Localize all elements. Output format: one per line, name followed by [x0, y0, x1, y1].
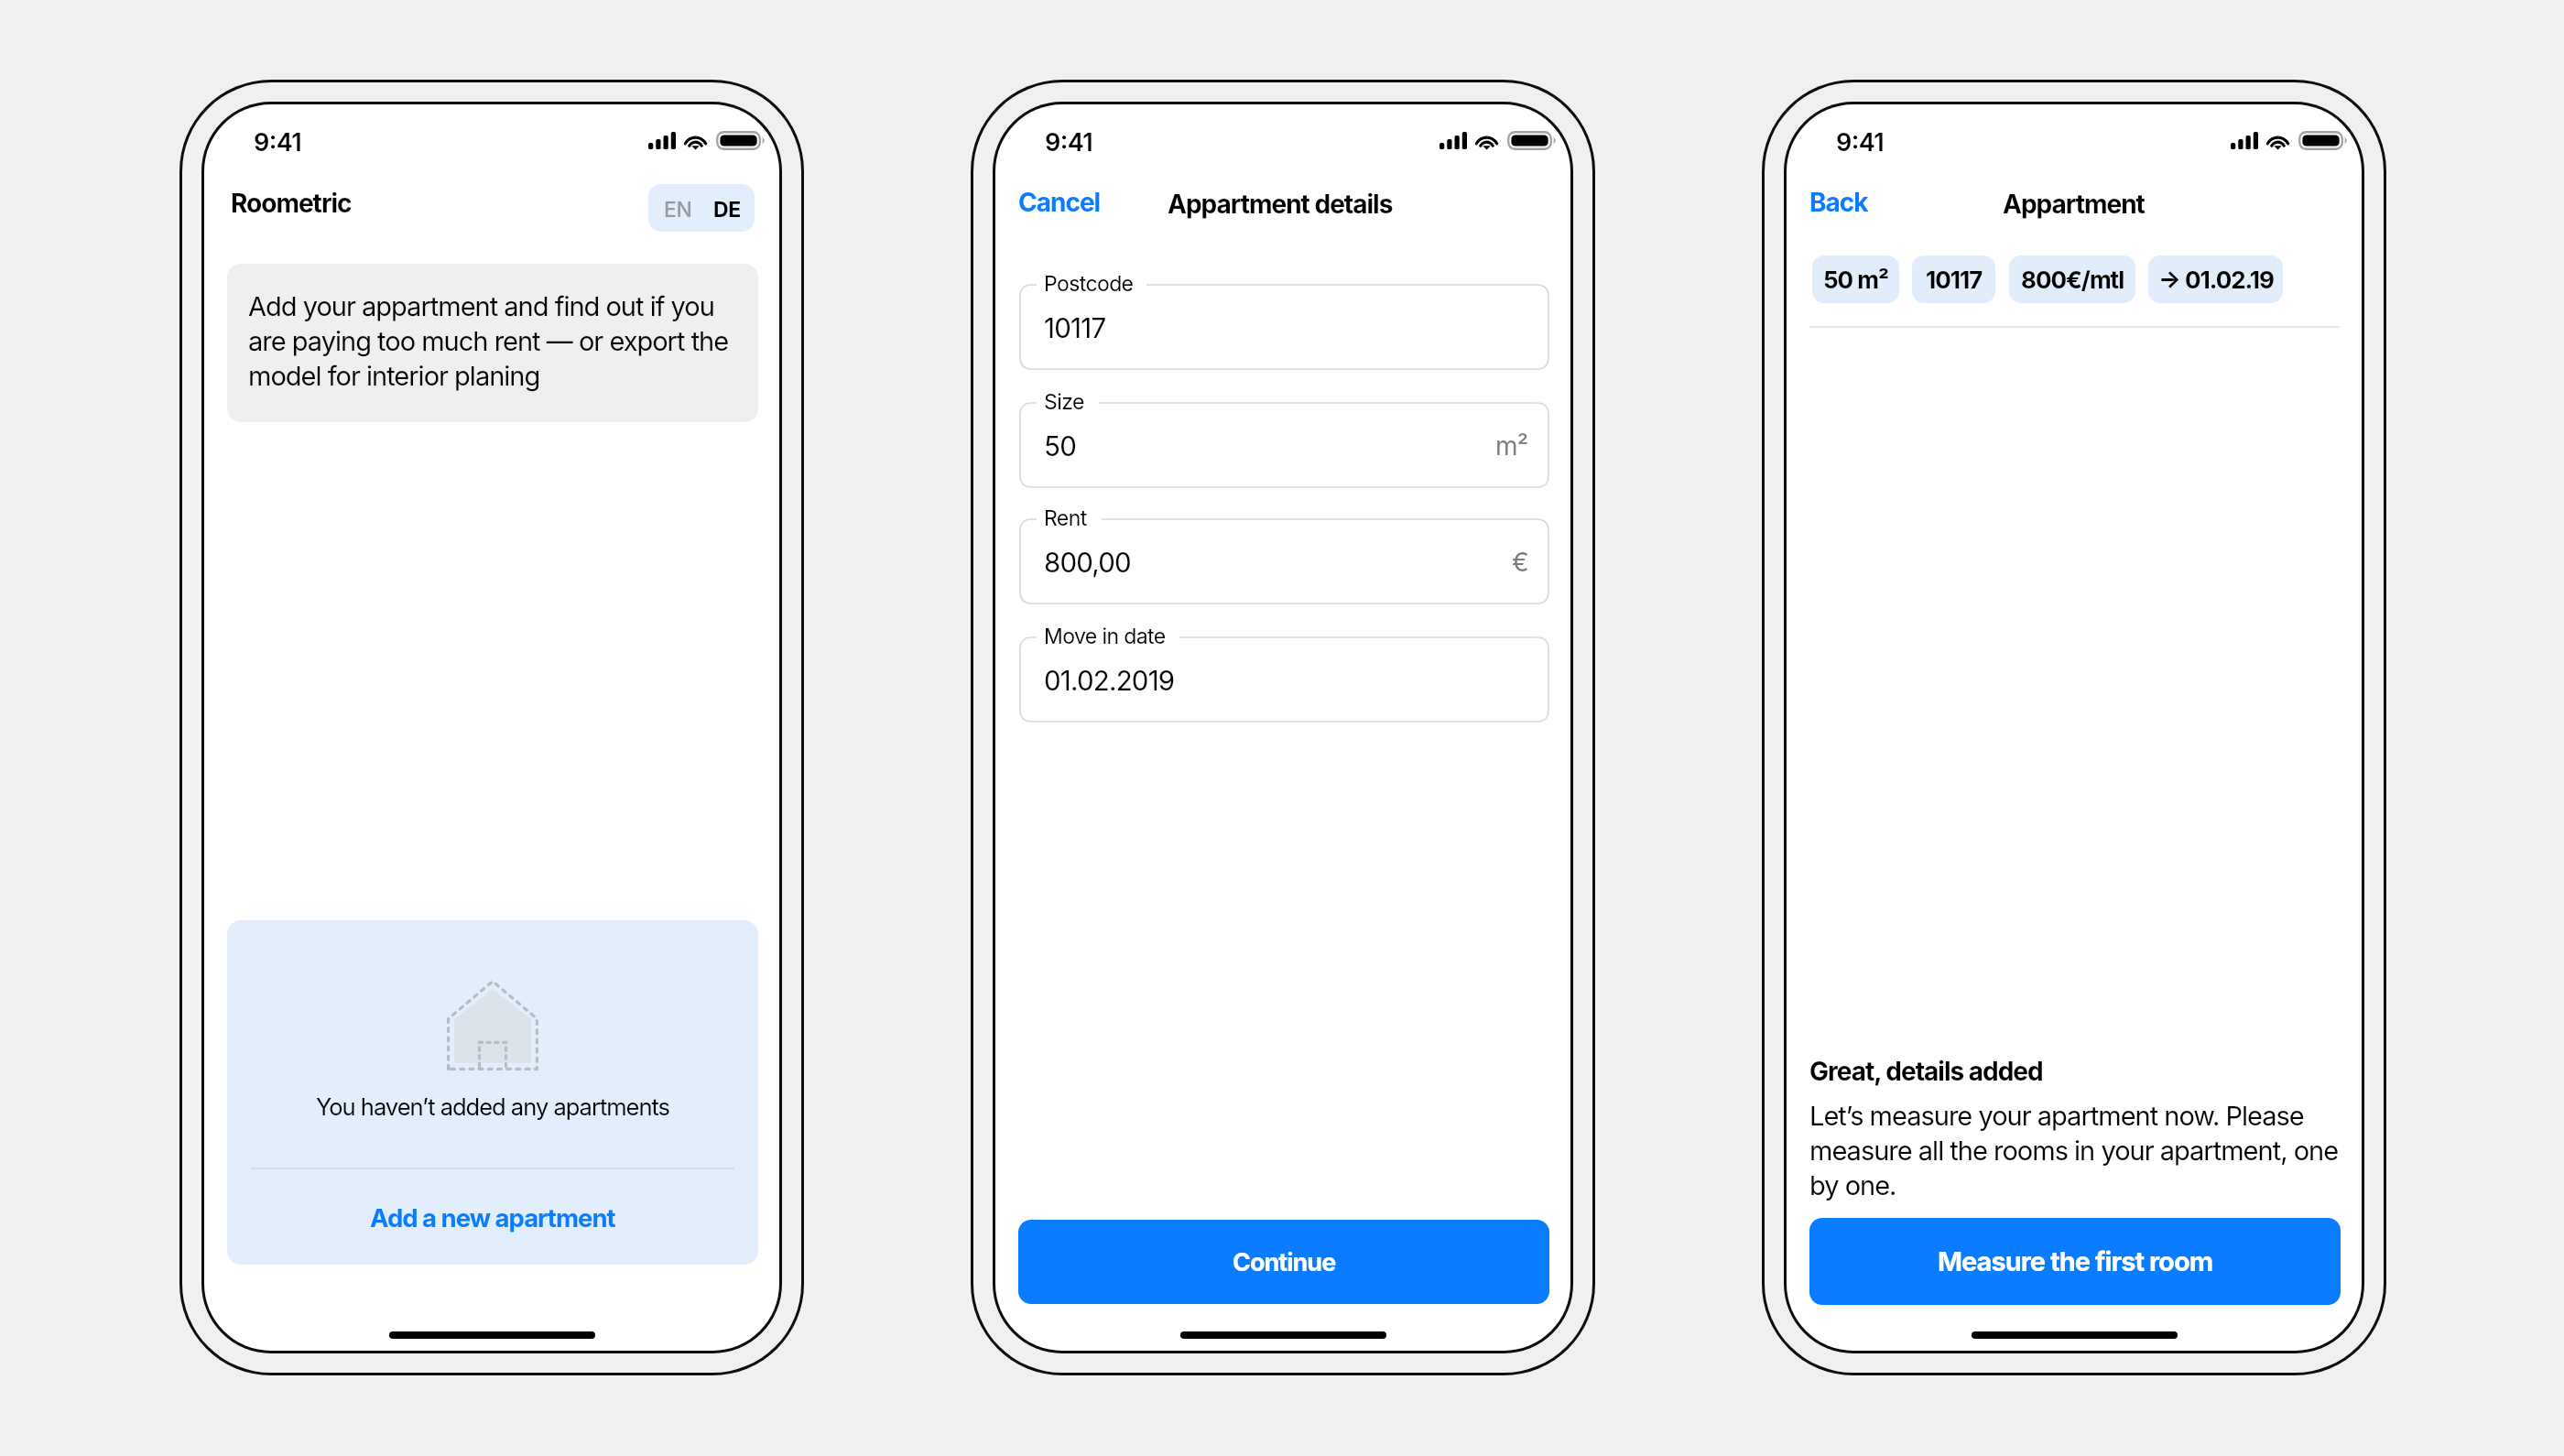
button[interactable]: 10117: [1912, 255, 1995, 303]
staticText: 9:41: [1045, 127, 1093, 158]
staticText: Let’s measure your apartment now. Please…: [1809, 1100, 2341, 1201]
staticText: 9:41: [1836, 127, 1885, 158]
staticText: Cancel: [1018, 187, 1101, 218]
staticText: Move in date: [1044, 624, 1166, 649]
staticText: → 01.02.19: [2158, 266, 2274, 294]
staticText: €: [1512, 547, 1528, 578]
button[interactable]: 800€/mtl: [2009, 255, 2135, 303]
button[interactable]: Measure the first room: [1809, 1218, 2341, 1305]
staticText: Roometric: [231, 188, 352, 219]
staticText: 10117: [1926, 266, 1983, 294]
staticText: Rent: [1044, 505, 1087, 531]
staticText: 800,00: [1044, 546, 1131, 579]
staticText: 800€/mtl: [2021, 266, 2124, 294]
staticText: Appartment details: [1168, 189, 1393, 220]
staticText: DE: [713, 197, 741, 223]
staticText: Postcode: [1044, 271, 1134, 297]
staticText: Add your appartment and find out if you …: [248, 290, 737, 392]
staticText: Continue: [1233, 1247, 1336, 1277]
staticText: 10117: [1044, 311, 1106, 344]
button[interactable]: Switch language EN / DE: [648, 184, 755, 232]
staticText: m²: [1495, 430, 1528, 462]
staticText: 50 m²: [1823, 266, 1888, 294]
staticText: You haven’t added any apartments: [227, 1092, 758, 1121]
staticText: 50: [1044, 429, 1076, 462]
staticText: Add a new apartment: [370, 1202, 615, 1233]
button[interactable]: → 01.02.19: [2148, 255, 2283, 303]
staticText: Appartment: [2003, 189, 2145, 220]
staticText: Size: [1044, 389, 1084, 415]
button[interactable]: Cancel: [997, 178, 1122, 227]
staticText: EN: [664, 197, 692, 223]
staticText: Great, details added: [1809, 1056, 2043, 1087]
button[interactable]: Continue: [1018, 1220, 1549, 1304]
button[interactable]: 50 m²: [1812, 255, 1899, 303]
staticText: Measure the first room: [1938, 1245, 2213, 1277]
staticText: 9:41: [254, 127, 302, 158]
staticText: 01.02.2019: [1044, 664, 1175, 697]
staticText: Back: [1809, 187, 1868, 218]
button[interactable]: Back: [1788, 178, 1889, 227]
button[interactable]: Add a new apartment: [227, 1169, 758, 1265]
